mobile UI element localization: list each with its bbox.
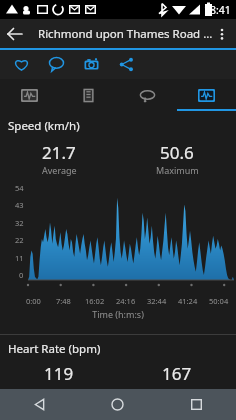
- button[interactable]: Back: [0, 389, 78, 420]
- staticText: 22: [15, 235, 24, 245]
- staticText: 50.6: [160, 141, 194, 164]
- staticText: Time (h:m:s): [0, 308, 236, 320]
- button[interactable]: Details: [59, 79, 118, 111]
- staticText: 7:48: [56, 296, 71, 306]
- button[interactable]: Map: [0, 79, 59, 111]
- staticText: Richmond upon Thames Road ...: [38, 26, 213, 42]
- staticText: Maximum: [156, 164, 199, 176]
- staticText: Heart Rate (bpm): [8, 341, 101, 357]
- staticText: 0:00: [26, 296, 41, 306]
- button[interactable]: Back: [0, 19, 30, 48]
- staticText: 0: [19, 270, 24, 280]
- button[interactable]: Like: [9, 52, 34, 77]
- button[interactable]: More options: [208, 20, 236, 48]
- staticText: 32:44: [147, 296, 167, 306]
- staticText: 41:24: [178, 296, 198, 306]
- button[interactable]: Comment: [44, 52, 69, 77]
- staticText: 32: [15, 218, 24, 228]
- staticText: 18:41: [204, 3, 231, 17]
- button[interactable]: Home: [78, 389, 157, 420]
- button[interactable]: Recent apps: [157, 389, 236, 420]
- staticText: 21.7: [42, 141, 76, 164]
- staticText: 54: [15, 183, 24, 193]
- staticText: 119: [44, 362, 74, 385]
- button[interactable]: Photo: [79, 52, 104, 77]
- staticText: Speed (km/h): [8, 118, 80, 134]
- staticText: 43: [15, 200, 24, 210]
- staticText: 167: [162, 362, 192, 385]
- staticText: 11: [15, 253, 24, 263]
- staticText: 16:02: [85, 296, 105, 306]
- button[interactable]: Laps: [118, 79, 177, 111]
- staticText: 50:04: [209, 296, 229, 306]
- staticText: 24:16: [116, 296, 136, 306]
- button[interactable]: Share: [114, 52, 139, 77]
- staticText: Average: [42, 164, 77, 176]
- button[interactable]: Graphs: [177, 79, 236, 111]
